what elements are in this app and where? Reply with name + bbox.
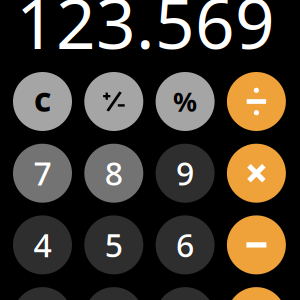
- staticText: C: [34, 84, 51, 119]
- button[interactable]: Plus minus: [84, 72, 143, 131]
- button[interactable]: 4: [13, 215, 72, 274]
- button[interactable]: Divide: [227, 72, 286, 131]
- staticText: 9: [176, 152, 194, 194]
- staticText: 4: [33, 224, 51, 266]
- staticText: 5: [105, 224, 123, 266]
- button[interactable]: 1: [13, 287, 72, 300]
- button[interactable]: 9: [156, 144, 215, 203]
- staticText: 8: [105, 152, 123, 194]
- button[interactable]: Multiply: [227, 144, 286, 203]
- button[interactable]: 8: [84, 144, 143, 203]
- staticText: 123.569: [16, 0, 275, 68]
- button[interactable]: 2: [84, 287, 143, 300]
- button[interactable]: 5: [84, 215, 143, 274]
- button[interactable]: 3: [156, 287, 215, 300]
- button[interactable]: Minus: [227, 215, 286, 274]
- button[interactable]: %: [156, 72, 215, 131]
- staticText: 7: [33, 152, 51, 194]
- button[interactable]: 6: [156, 215, 215, 274]
- button[interactable]: C: [13, 72, 72, 131]
- button[interactable]: 7: [13, 144, 72, 203]
- staticText: %: [173, 84, 197, 119]
- staticText: 6: [176, 224, 194, 266]
- button[interactable]: Plus: [227, 287, 286, 300]
